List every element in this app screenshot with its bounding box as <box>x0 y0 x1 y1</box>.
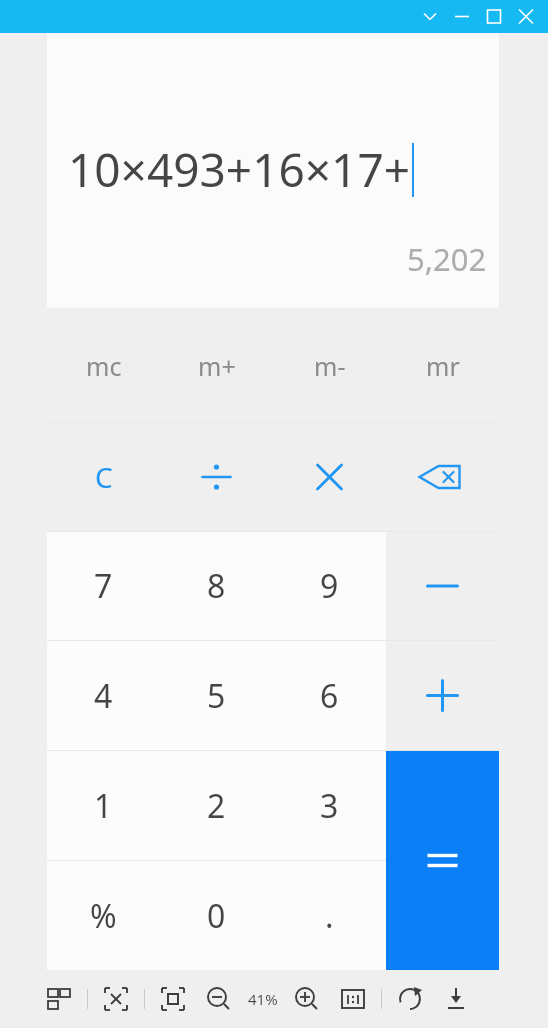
button[interactable]: Maximize <box>478 0 510 33</box>
button[interactable]: m+ <box>160 310 273 422</box>
button[interactable]: 9 <box>273 532 386 640</box>
staticText: . <box>325 894 334 938</box>
button[interactable]: 6 <box>273 641 386 750</box>
button[interactable]: Backspace <box>386 423 499 531</box>
button[interactable]: m- <box>273 310 386 422</box>
staticText: 6 <box>320 674 339 718</box>
button[interactable]: 0 <box>160 861 273 970</box>
staticText: 8 <box>207 564 226 608</box>
staticText: 9 <box>320 564 339 608</box>
staticText: 3 <box>320 784 339 828</box>
staticText: m- <box>314 349 346 383</box>
button[interactable]: mc <box>47 310 160 422</box>
button[interactable]: One to one <box>330 976 376 1022</box>
button[interactable]: Minimize <box>446 0 478 33</box>
button[interactable]: Close <box>510 0 542 33</box>
button[interactable]: % <box>47 861 160 970</box>
button[interactable]: Zoom in <box>284 976 330 1022</box>
button[interactable]: 5 <box>160 641 273 750</box>
staticText: 5 <box>207 674 226 718</box>
button[interactable]: mr <box>386 310 499 422</box>
button[interactable]: Divide <box>160 423 273 531</box>
button[interactable]: 2 <box>160 751 273 860</box>
button[interactable]: 1 <box>47 751 160 860</box>
staticText: 7 <box>94 564 113 608</box>
button[interactable]: Rotate <box>387 976 433 1022</box>
button[interactable]: Multiply <box>273 423 386 531</box>
staticText: 4 <box>94 674 113 718</box>
button[interactable]: Layout <box>36 976 82 1022</box>
button[interactable]: Plus <box>386 641 499 750</box>
button[interactable]: . <box>273 861 386 970</box>
button[interactable]: Zoom out <box>196 976 242 1022</box>
button[interactable]: Actual size <box>150 976 196 1022</box>
button[interactable]: Download <box>433 976 479 1022</box>
staticText: mc <box>86 349 122 383</box>
staticText: m+ <box>198 349 236 383</box>
staticText: % <box>90 894 117 938</box>
button[interactable]: Expand <box>414 0 446 33</box>
button[interactable]: 7 <box>47 532 160 640</box>
button[interactable]: 8 <box>160 532 273 640</box>
staticText: 5,202 <box>407 238 487 280</box>
staticText: 10×493+16×17+ <box>68 138 411 201</box>
staticText: C <box>95 458 113 496</box>
staticText: 1 <box>94 784 113 828</box>
button[interactable]: Minus <box>386 532 499 640</box>
staticText: 2 <box>207 784 226 828</box>
staticText: mr <box>426 349 460 383</box>
staticText: 0 <box>207 894 226 938</box>
button[interactable]: 4 <box>47 641 160 750</box>
button[interactable]: C <box>47 423 160 531</box>
button[interactable]: 3 <box>273 751 386 860</box>
button[interactable]: Equals <box>386 751 499 970</box>
staticText: 41% <box>248 989 278 1009</box>
button[interactable]: Fit <box>93 976 139 1022</box>
